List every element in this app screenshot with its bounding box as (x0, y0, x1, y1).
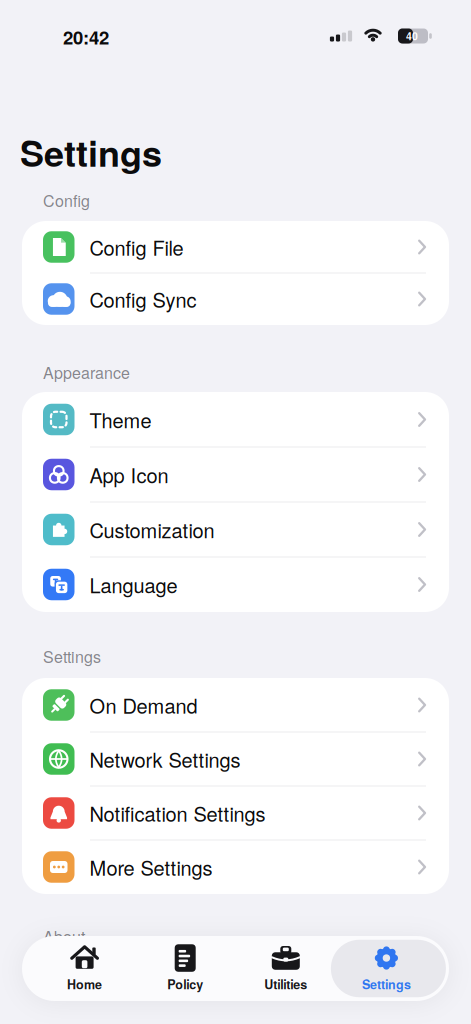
staticText: Config (43, 188, 90, 211)
staticText: About (43, 924, 85, 947)
staticText: Utilities (264, 975, 307, 993)
staticText: Settings (362, 975, 411, 993)
button[interactable]: Notification Settings (22, 786, 449, 840)
staticText: Settings (20, 126, 162, 178)
staticText: Config File (89, 233, 183, 261)
staticText: Appearance (43, 360, 130, 383)
staticText: Settings (43, 644, 101, 667)
staticText: Notification Settings (89, 799, 265, 827)
button[interactable]: Customization (22, 502, 449, 557)
staticText: Theme (89, 405, 151, 434)
button[interactable]: Utilities (235, 937, 336, 1000)
button[interactable]: Policy (135, 937, 235, 1000)
staticText: Policy (167, 975, 203, 993)
staticText: More Settings (89, 853, 212, 881)
staticText: On Demand (89, 691, 197, 719)
staticText: Config Sync (89, 285, 196, 313)
staticText: 40 (406, 28, 418, 44)
staticText: App Icon (89, 460, 168, 489)
staticText: Customization (89, 515, 214, 544)
button[interactable]: More Settings (22, 840, 449, 894)
button[interactable]: Config Sync (22, 273, 449, 325)
button[interactable]: Network Settings (22, 732, 449, 786)
staticText: Network Settings (89, 745, 240, 773)
button[interactable]: Settings (336, 937, 437, 1000)
button[interactable]: Theme (22, 392, 449, 447)
button[interactable]: Home (34, 937, 135, 1000)
staticText: Home (67, 975, 102, 993)
button[interactable]: Language (22, 557, 449, 612)
staticText: 20:42 (63, 24, 109, 50)
button[interactable]: App Icon (22, 447, 449, 502)
button[interactable]: On Demand (22, 678, 449, 732)
button[interactable]: Config File (22, 221, 449, 273)
staticText: Language (89, 570, 177, 599)
